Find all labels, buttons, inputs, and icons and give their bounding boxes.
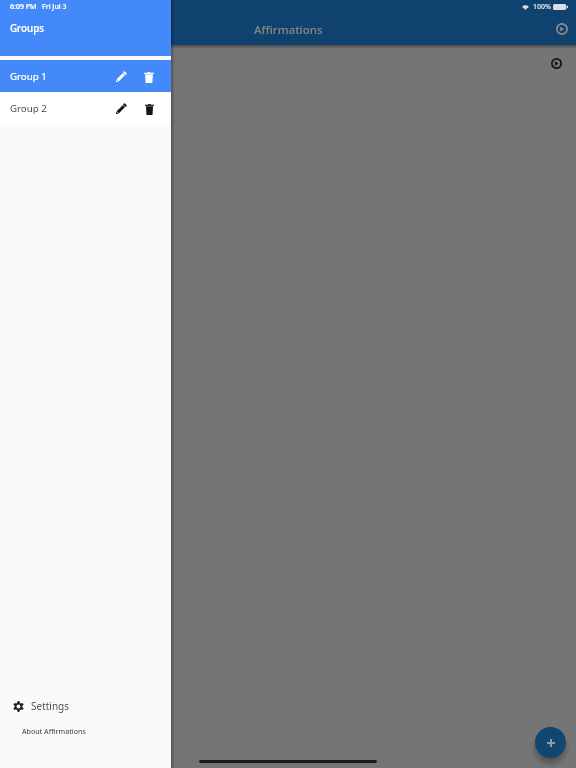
staticText: Group 2 xyxy=(10,102,110,115)
button[interactable]: Edit Group 2 xyxy=(110,95,136,121)
button[interactable]: Delete Group 1 xyxy=(136,63,162,89)
button[interactable]: Play xyxy=(544,51,568,75)
staticText: Fri Jul 3 xyxy=(42,2,67,12)
button[interactable]: Settings xyxy=(0,694,171,718)
button[interactable]: Delete Group 2 xyxy=(136,95,162,121)
staticText: Group 1 xyxy=(10,70,110,83)
button[interactable]: About Affirmations xyxy=(0,724,171,740)
button[interactable]: Add affirmation xyxy=(535,727,566,758)
staticText: Affirmations xyxy=(254,22,323,38)
staticText: Settings xyxy=(31,699,70,713)
button[interactable]: Edit Group 1 xyxy=(110,63,136,89)
button[interactable]: Group 2 xyxy=(0,92,171,124)
staticText: Groups xyxy=(10,22,45,35)
button[interactable]: Group 1 xyxy=(0,60,171,92)
staticText: 6:09 PM xyxy=(10,2,37,12)
staticText: 100% xyxy=(533,2,551,12)
button[interactable]: Play all xyxy=(550,17,574,41)
staticText: About Affirmations xyxy=(22,727,86,737)
